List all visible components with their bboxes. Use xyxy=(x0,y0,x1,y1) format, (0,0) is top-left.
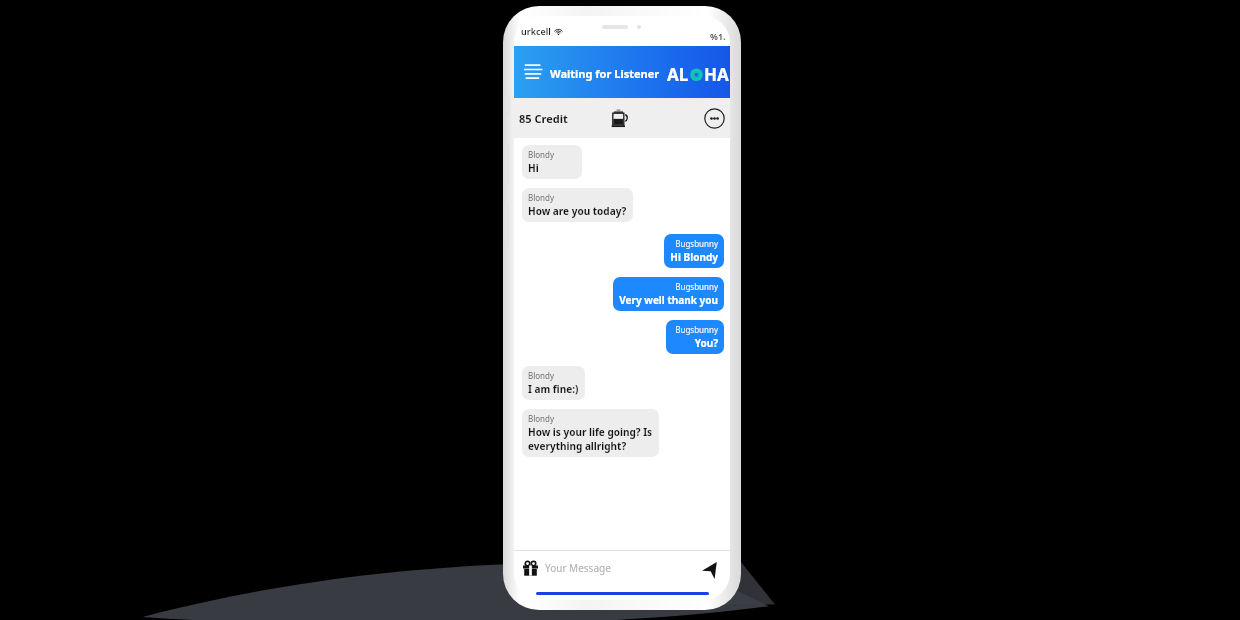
staticText: Hi Blondy xyxy=(670,250,718,264)
staticText: Bugsbunny xyxy=(675,281,718,292)
button[interactable]: Send xyxy=(700,556,724,580)
button[interactable]: Your Message xyxy=(545,561,700,575)
staticText: Blondy xyxy=(528,413,555,424)
button[interactable]: Aloha xyxy=(667,63,729,86)
staticText: Very well thank you xyxy=(619,293,718,307)
staticText: I am fine:) xyxy=(528,382,579,396)
staticText: How is your life going? Is xyxy=(528,425,653,439)
staticText: How are you today? xyxy=(528,204,627,218)
button[interactable]: Blondy xyxy=(522,188,633,222)
staticText: Bugsbunny xyxy=(675,324,718,335)
staticText: Hi xyxy=(528,161,539,175)
button[interactable]: Blondy xyxy=(522,366,585,400)
staticText: Bugsbunny xyxy=(675,238,718,249)
button[interactable]: Blondy xyxy=(522,409,659,457)
staticText: HA xyxy=(704,63,729,86)
staticText: You? xyxy=(694,336,718,350)
staticText: Blondy xyxy=(528,149,555,160)
button[interactable]: Menu xyxy=(519,57,549,87)
button[interactable]: Buy coffee xyxy=(604,104,632,132)
staticText: Your Message xyxy=(545,561,611,575)
staticText: %1. xyxy=(710,30,726,42)
staticText: urkcell xyxy=(521,25,551,37)
staticText: Blondy xyxy=(528,192,555,203)
staticText: 85 Credit xyxy=(519,111,568,126)
staticText: Blondy xyxy=(528,370,555,381)
staticText: AL xyxy=(667,63,689,86)
button[interactable]: Bugsbunny xyxy=(664,234,724,268)
staticText: Waiting for Listener xyxy=(550,66,660,81)
button[interactable]: Blondy xyxy=(522,145,582,179)
button[interactable]: Bugsbunny xyxy=(613,277,724,311)
button[interactable]: Bugsbunny xyxy=(666,320,724,354)
button[interactable]: More options xyxy=(704,108,725,129)
staticText: everything allright? xyxy=(528,439,627,453)
button[interactable]: Send gift xyxy=(520,558,540,578)
